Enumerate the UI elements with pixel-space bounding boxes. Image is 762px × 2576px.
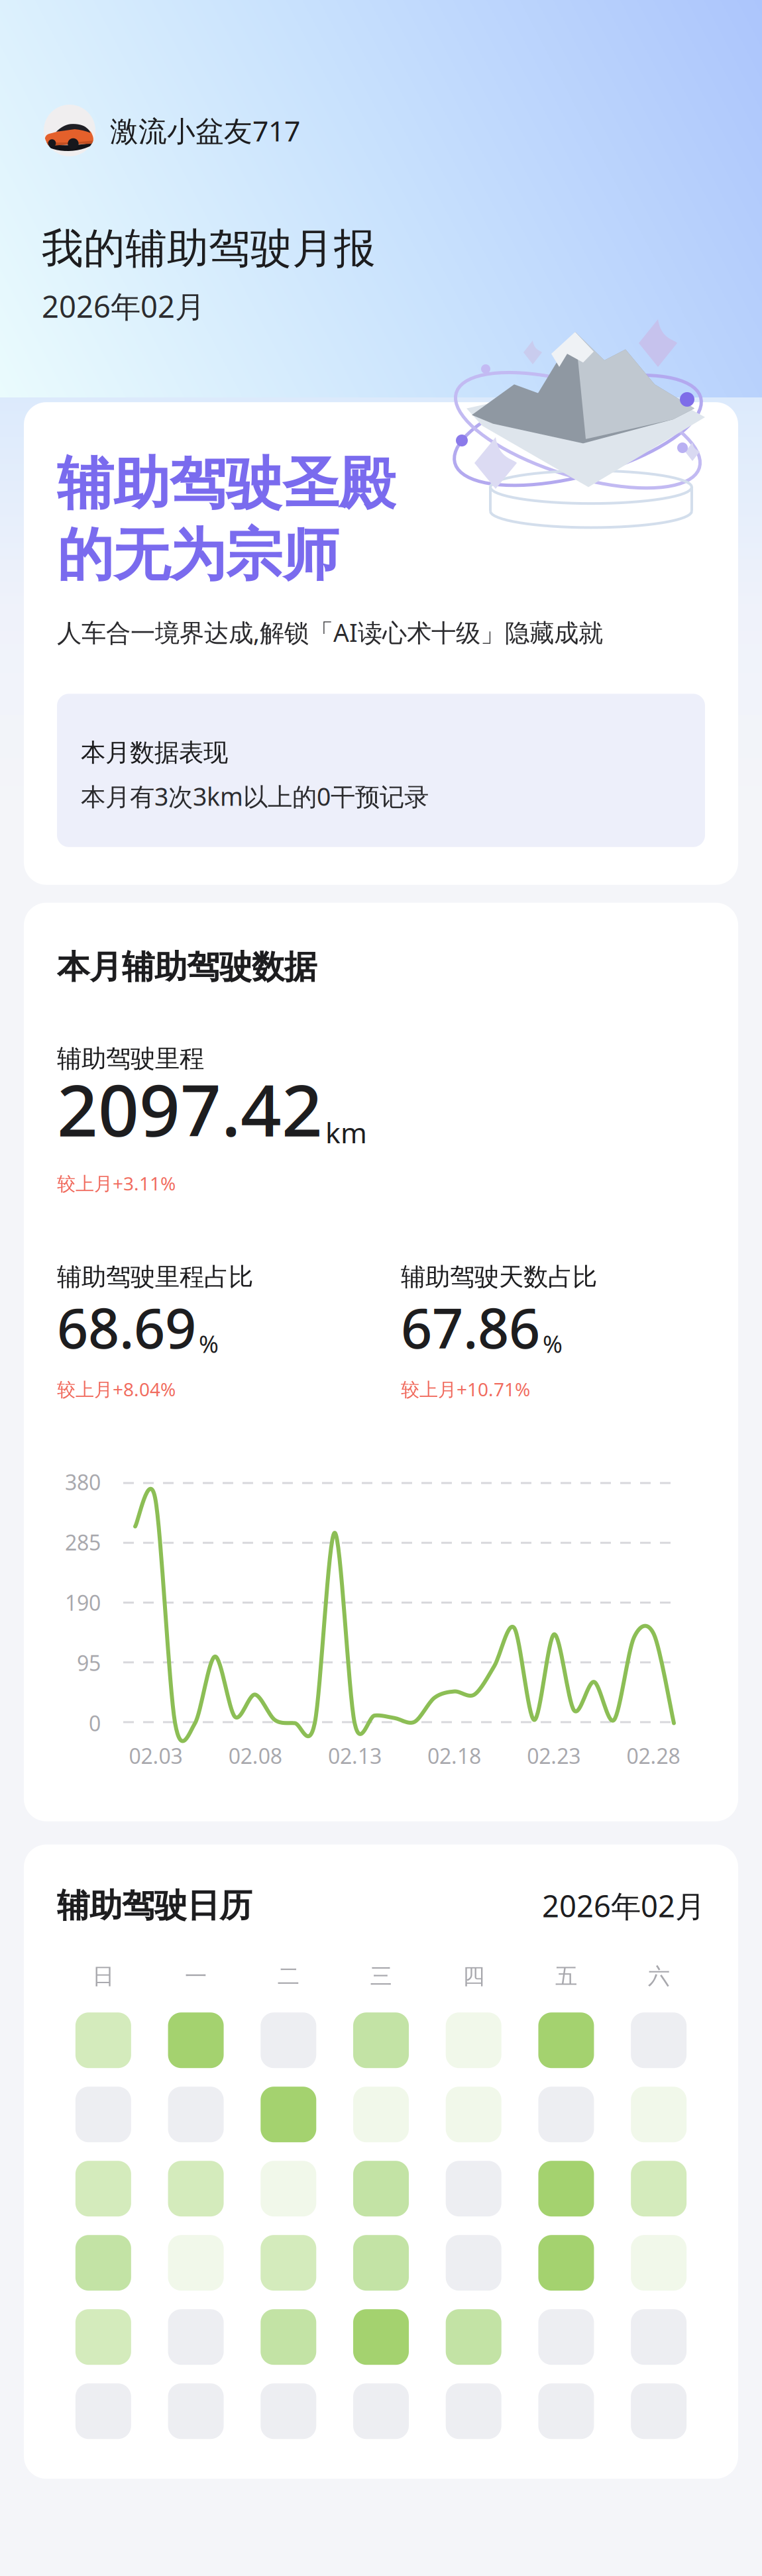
staticText: % bbox=[543, 1328, 563, 1360]
staticText: 02.23 bbox=[527, 1742, 581, 1770]
staticText: 本月有3次3km以上的0干预记录 bbox=[81, 780, 429, 813]
staticText: 辅助驾驶里程占比 bbox=[57, 1262, 253, 1292]
staticText: 67.86 bbox=[401, 1291, 540, 1364]
staticText: 02.03 bbox=[129, 1742, 183, 1770]
staticText: 0 bbox=[89, 1709, 101, 1737]
staticText: 三 bbox=[370, 1963, 392, 1990]
staticText: 二 bbox=[278, 1963, 299, 1990]
staticText: 02.13 bbox=[328, 1742, 382, 1770]
staticText: 2097.42 bbox=[57, 1061, 323, 1156]
staticText: 五 bbox=[555, 1963, 577, 1990]
staticText: 激流小盆友717 bbox=[110, 112, 300, 149]
staticText: 02.18 bbox=[427, 1742, 481, 1770]
staticText: 190 bbox=[65, 1589, 101, 1617]
staticText: 六 bbox=[648, 1963, 670, 1990]
staticText: 较上月+3.11% bbox=[57, 1171, 176, 1196]
staticText: 本月辅助驾驶数据 bbox=[57, 947, 317, 987]
staticText: 辅助驾驶里程 bbox=[57, 1044, 204, 1074]
staticText: 95 bbox=[77, 1649, 101, 1677]
staticText: % bbox=[199, 1328, 219, 1360]
staticText: 285 bbox=[65, 1528, 101, 1556]
staticText: 68.69 bbox=[57, 1291, 196, 1364]
staticText: 02.28 bbox=[626, 1742, 680, 1770]
staticText: 较上月+8.04% bbox=[57, 1377, 176, 1401]
staticText: km bbox=[325, 1113, 367, 1151]
staticText: 本月数据表现 bbox=[81, 737, 228, 768]
staticText: 辅助驾驶天数占比 bbox=[401, 1262, 597, 1292]
staticText: 2026年02月 bbox=[42, 286, 205, 326]
staticText: 较上月+10.71% bbox=[401, 1377, 530, 1401]
staticText: 的无为宗师 bbox=[57, 521, 339, 590]
staticText: 人车合一境界达成,解锁「AI读心术十级」隐藏成就 bbox=[57, 616, 603, 649]
staticText: 2026年02月 bbox=[542, 1886, 705, 1926]
staticText: 辅助驾驶日历 bbox=[57, 1886, 252, 1926]
staticText: 日 bbox=[92, 1963, 114, 1990]
staticText: 02.08 bbox=[228, 1742, 282, 1770]
staticText: 我的辅助驾驶月报 bbox=[42, 223, 376, 274]
staticText: 辅助驾驶圣殿 bbox=[57, 449, 395, 519]
staticText: 四 bbox=[463, 1963, 484, 1990]
staticText: 一 bbox=[185, 1963, 207, 1990]
staticText: 380 bbox=[65, 1468, 101, 1496]
